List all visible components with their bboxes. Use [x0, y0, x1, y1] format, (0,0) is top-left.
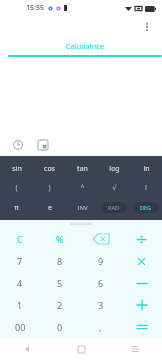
button[interactable]: History — [9, 136, 27, 154]
staticText: sin — [12, 164, 22, 174]
button[interactable]: 3 — [80, 294, 121, 316]
button[interactable]: √ — [98, 178, 130, 197]
button[interactable]: ) — [33, 178, 66, 197]
button[interactable]: Divide — [121, 228, 162, 250]
staticText: 15:55 — [26, 3, 44, 13]
button[interactable]: More options — [138, 18, 156, 36]
staticText: 7 — [17, 255, 23, 267]
button[interactable]: 0 — [40, 316, 80, 338]
button[interactable]: log — [98, 159, 130, 178]
staticText: ! — [145, 183, 147, 193]
button[interactable]: Minus — [121, 272, 162, 294]
staticText: 9 — [98, 255, 104, 267]
button[interactable]: Home — [54, 338, 108, 360]
button[interactable]: ! — [130, 178, 162, 197]
button[interactable]: C — [0, 228, 40, 250]
button[interactable]: , — [80, 316, 121, 338]
staticText: cos — [44, 164, 55, 174]
staticText: log — [109, 164, 120, 174]
button[interactable]: π — [0, 197, 33, 218]
button[interactable]: 4 — [0, 272, 40, 294]
button[interactable]: Equals — [121, 316, 162, 338]
button[interactable]: Multiply — [121, 250, 162, 272]
staticText: INV — [77, 204, 88, 212]
button[interactable]: e — [33, 197, 66, 218]
button[interactable]: 9 — [80, 250, 121, 272]
staticText: , — [99, 321, 102, 333]
staticText: π — [14, 203, 19, 213]
staticText: tan — [77, 164, 88, 174]
button[interactable]: RAD — [101, 202, 127, 213]
button[interactable]: Keypad layout — [34, 136, 52, 154]
button[interactable]: ln — [130, 159, 162, 178]
button[interactable]: ( — [0, 178, 33, 197]
staticText: ) — [48, 183, 51, 193]
button[interactable]: Recent apps — [108, 338, 162, 360]
button[interactable]: Back — [0, 338, 54, 360]
button[interactable]: tan — [66, 159, 98, 178]
staticText: e — [48, 203, 52, 213]
button[interactable]: Plus — [121, 294, 162, 316]
staticText: ln — [143, 164, 150, 174]
staticText: ( — [15, 183, 18, 193]
staticText: 0 — [57, 321, 63, 333]
button[interactable]: 7 — [0, 250, 40, 272]
button[interactable]: Backspace — [80, 228, 121, 250]
staticText: RAD — [108, 204, 120, 211]
staticText: 8 — [57, 255, 63, 267]
button[interactable]: 5 — [40, 272, 80, 294]
button[interactable]: 2 — [40, 294, 80, 316]
button[interactable]: cos — [33, 159, 66, 178]
staticText: 6 — [98, 277, 104, 289]
staticText: 00 — [15, 321, 26, 333]
staticText: Calcolatrice — [66, 42, 105, 52]
button[interactable]: 1 — [0, 294, 40, 316]
button[interactable]: Calcolatrice — [8, 40, 162, 59]
staticText: ^ — [80, 183, 85, 193]
button[interactable]: DEG — [133, 202, 159, 213]
button[interactable]: sin — [0, 159, 33, 178]
button[interactable]: % — [40, 228, 80, 250]
staticText: DEG — [140, 204, 152, 211]
staticText: 3 — [98, 299, 104, 311]
staticText: 4 — [17, 277, 23, 289]
staticText: C — [17, 233, 23, 245]
staticText: √ — [112, 184, 117, 192]
button[interactable]: 6 — [80, 272, 121, 294]
staticText: 1 — [17, 299, 23, 311]
staticText: % — [56, 233, 64, 245]
button[interactable]: ^ — [66, 178, 98, 197]
button[interactable]: INV — [66, 197, 98, 218]
button[interactable]: 00 — [0, 316, 40, 338]
button[interactable]: 8 — [40, 250, 80, 272]
staticText: 2 — [57, 299, 63, 311]
staticText: 5 — [57, 277, 63, 289]
